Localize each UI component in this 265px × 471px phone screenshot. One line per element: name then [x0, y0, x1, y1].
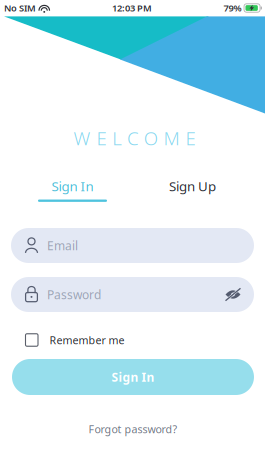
staticText: WELCOME: [74, 126, 195, 150]
staticText: Sign In: [51, 177, 93, 195]
staticText: 12:03 PM: [112, 2, 152, 14]
staticText: Forgot password?: [88, 422, 177, 436]
staticText: Sign In: [111, 369, 154, 385]
staticText: Sign Up: [169, 177, 216, 195]
button[interactable]: Sign In: [12, 359, 254, 395]
button[interactable]: Sign Up: [158, 179, 227, 202]
staticText: Password: [47, 286, 101, 302]
button[interactable]: Forgot password?: [58, 420, 208, 438]
staticText: No SIM: [4, 2, 36, 14]
staticText: 79%: [223, 2, 241, 14]
button[interactable]: Sign In: [38, 179, 107, 202]
button[interactable]: Remember me: [25, 330, 165, 350]
staticText: Email: [47, 237, 78, 253]
staticText: Remember me: [49, 333, 124, 347]
